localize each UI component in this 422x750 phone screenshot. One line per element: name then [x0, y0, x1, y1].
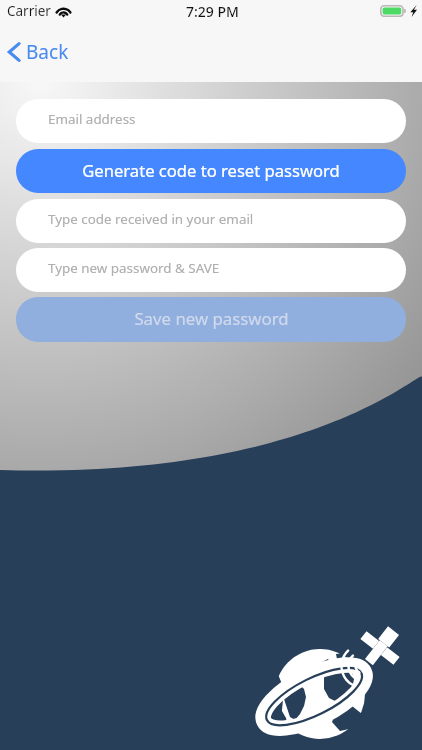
button[interactable]: Type code received in your email [16, 199, 406, 243]
staticText: Generate code to reset password [82, 159, 340, 182]
button[interactable]: Type new password & SAVE [16, 248, 406, 292]
staticText: Type code received in your email [48, 210, 254, 228]
button[interactable]: Email address [16, 99, 406, 143]
button[interactable]: Save new password [16, 297, 406, 342]
button[interactable]: Back [0, 33, 81, 71]
staticText: 7:29 PM [186, 2, 239, 21]
staticText: Back [26, 39, 69, 65]
staticText: Carrier [7, 2, 51, 20]
staticText: Type new password & SAVE [48, 259, 220, 277]
staticText: Email address [48, 110, 136, 128]
button[interactable]: Generate code to reset password [16, 149, 406, 193]
staticText: Save new password [134, 307, 289, 330]
